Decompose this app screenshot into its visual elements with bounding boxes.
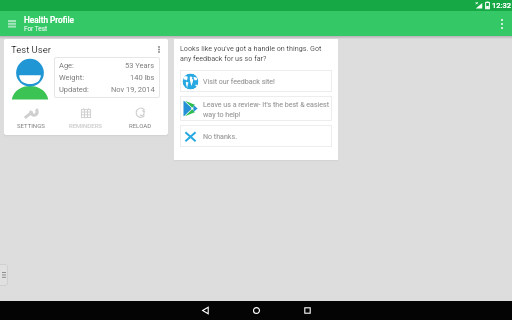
button[interactable]: Back [180, 301, 230, 320]
button[interactable]: REMINDERS [58, 101, 113, 135]
staticText: Nov 19, 2014 [111, 85, 155, 94]
button[interactable]: Open drawer [0, 264, 8, 286]
button[interactable]: Visit our feedback site! [180, 70, 332, 92]
button[interactable]: More options [492, 11, 512, 36]
staticText: For Test [24, 25, 48, 33]
staticText: No thanks. [203, 132, 237, 140]
button[interactable]: Recent apps [282, 301, 332, 320]
staticText: RELOAD [129, 122, 152, 129]
staticText: Health Profile [24, 15, 74, 25]
staticText: Age: [59, 61, 74, 70]
staticText: 12:32 [492, 1, 512, 10]
staticText: Test User [11, 44, 51, 55]
button[interactable]: SETTINGS [4, 101, 58, 135]
staticText: Looks like you've got a handle on things… [180, 44, 322, 63]
button[interactable]: Home [231, 301, 281, 320]
staticText: 53 Years [125, 61, 155, 70]
staticText: Weight: [59, 73, 84, 82]
staticText: Leave us a review- It's the best & easie… [203, 100, 330, 118]
button[interactable]: No thanks. [180, 125, 332, 147]
staticText: SETTINGS [17, 122, 45, 129]
button[interactable]: Profile options [152, 41, 166, 57]
staticText: Updated: [59, 85, 89, 94]
button[interactable]: Leave us a review- It's the best & easie… [180, 96, 332, 121]
button[interactable]: RELOAD [113, 101, 168, 135]
staticText: Visit our feedback site! [203, 77, 275, 85]
staticText: 140 lbs [130, 73, 155, 82]
button[interactable]: Open navigation drawer [3, 11, 20, 36]
staticText: REMINDERS [69, 122, 102, 129]
